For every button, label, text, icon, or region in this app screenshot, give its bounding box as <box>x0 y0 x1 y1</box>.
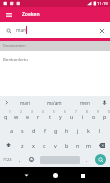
staticText: Zoeken <box>22 11 40 18</box>
staticText: w <box>14 113 19 120</box>
button[interactable]: w <box>11 109 22 123</box>
staticText: z <box>21 142 24 149</box>
button[interactable]: . <box>81 152 92 166</box>
staticText: 4 <box>42 110 44 114</box>
staticText: c <box>43 142 46 149</box>
staticText: 1 <box>9 110 11 114</box>
staticText: ?123 <box>3 157 12 162</box>
staticText: 6 <box>64 110 66 114</box>
staticText: mari <box>20 100 30 106</box>
button[interactable]: j <box>72 123 83 137</box>
button[interactable]: u <box>66 109 77 123</box>
staticText: 5 <box>53 110 55 114</box>
staticText: y <box>59 113 62 120</box>
staticText: t <box>49 113 51 120</box>
staticText: x <box>32 142 35 149</box>
staticText: l <box>99 127 101 134</box>
staticText: ma'am <box>47 100 62 106</box>
button[interactable]: x <box>28 138 39 152</box>
staticText: mari <box>16 27 27 34</box>
button[interactable]: n <box>72 138 83 152</box>
button[interactable]: Backspace <box>95 138 108 152</box>
button[interactable]: m <box>83 138 94 152</box>
staticText: r <box>37 113 40 120</box>
button[interactable]: Shift <box>2 138 15 152</box>
button[interactable]: , <box>14 152 25 166</box>
staticText: j <box>77 127 79 134</box>
staticText: g <box>54 127 58 134</box>
staticText: 8 <box>86 110 88 114</box>
button[interactable]: d <box>28 123 39 137</box>
staticText: v <box>54 142 57 149</box>
button[interactable]: Back <box>18 167 34 183</box>
button[interactable]: f <box>39 123 50 137</box>
staticText: s <box>21 127 24 134</box>
button[interactable]: z <box>17 138 28 152</box>
staticText: b <box>65 142 69 149</box>
button[interactable]: r <box>33 109 44 123</box>
staticText: Bonbonketu <box>3 56 28 62</box>
staticText: q <box>4 113 8 120</box>
button[interactable]: c <box>39 138 50 152</box>
button[interactable]: k <box>83 123 94 137</box>
button[interactable]: Emoji <box>26 152 37 166</box>
button[interactable]: ma'am <box>39 96 70 109</box>
staticText: 9 <box>97 110 99 114</box>
button[interactable]: Clear <box>96 22 108 39</box>
staticText: k <box>87 127 90 134</box>
button[interactable]: More suggestions <box>1 96 11 109</box>
button[interactable]: Voice input <box>98 96 110 109</box>
staticText: i <box>82 113 84 120</box>
staticText: h <box>65 127 69 134</box>
staticText: Documenten <box>3 43 26 48</box>
button[interactable]: l <box>94 123 105 137</box>
staticText: 2 <box>20 110 22 114</box>
staticText: . <box>86 156 88 163</box>
button[interactable]: mari <box>11 96 38 109</box>
button[interactable]: Menu <box>1 7 17 22</box>
staticText: men <box>80 100 90 106</box>
staticText: n <box>76 142 80 149</box>
button[interactable]: men <box>71 96 98 109</box>
staticText: 0 <box>108 110 110 114</box>
staticText: a <box>10 127 14 134</box>
button[interactable]: p <box>99 109 110 123</box>
button[interactable]: ?123 <box>1 152 14 166</box>
staticText: e <box>26 113 30 120</box>
staticText: 3 <box>31 110 33 114</box>
button[interactable] <box>2 22 108 39</box>
staticText: p <box>103 113 107 120</box>
button[interactable]: o <box>88 109 99 123</box>
button[interactable]: Bonbonketu <box>0 52 110 66</box>
staticText: 11:19 <box>97 1 108 7</box>
button[interactable]: Home <box>47 167 63 183</box>
button[interactable]: h <box>61 123 72 137</box>
button[interactable]: y <box>55 109 66 123</box>
button[interactable]: g <box>50 123 61 137</box>
staticText: , <box>19 156 21 163</box>
staticText: d <box>32 127 36 134</box>
button[interactable]: e <box>22 109 33 123</box>
button[interactable]: b <box>61 138 72 152</box>
button[interactable]: v <box>50 138 61 152</box>
staticText: m <box>86 142 92 149</box>
button[interactable]: t <box>44 109 55 123</box>
staticText: 7 <box>75 110 77 114</box>
button[interactable]: Recents <box>75 167 91 183</box>
button[interactable]: s <box>17 123 28 137</box>
button[interactable]: Search <box>92 152 108 166</box>
button[interactable]: a <box>6 123 17 137</box>
staticText: u <box>70 113 74 120</box>
button[interactable]: q <box>0 109 11 123</box>
button[interactable]: i <box>77 109 88 123</box>
staticText: o <box>92 113 96 120</box>
staticText: f <box>44 127 46 134</box>
